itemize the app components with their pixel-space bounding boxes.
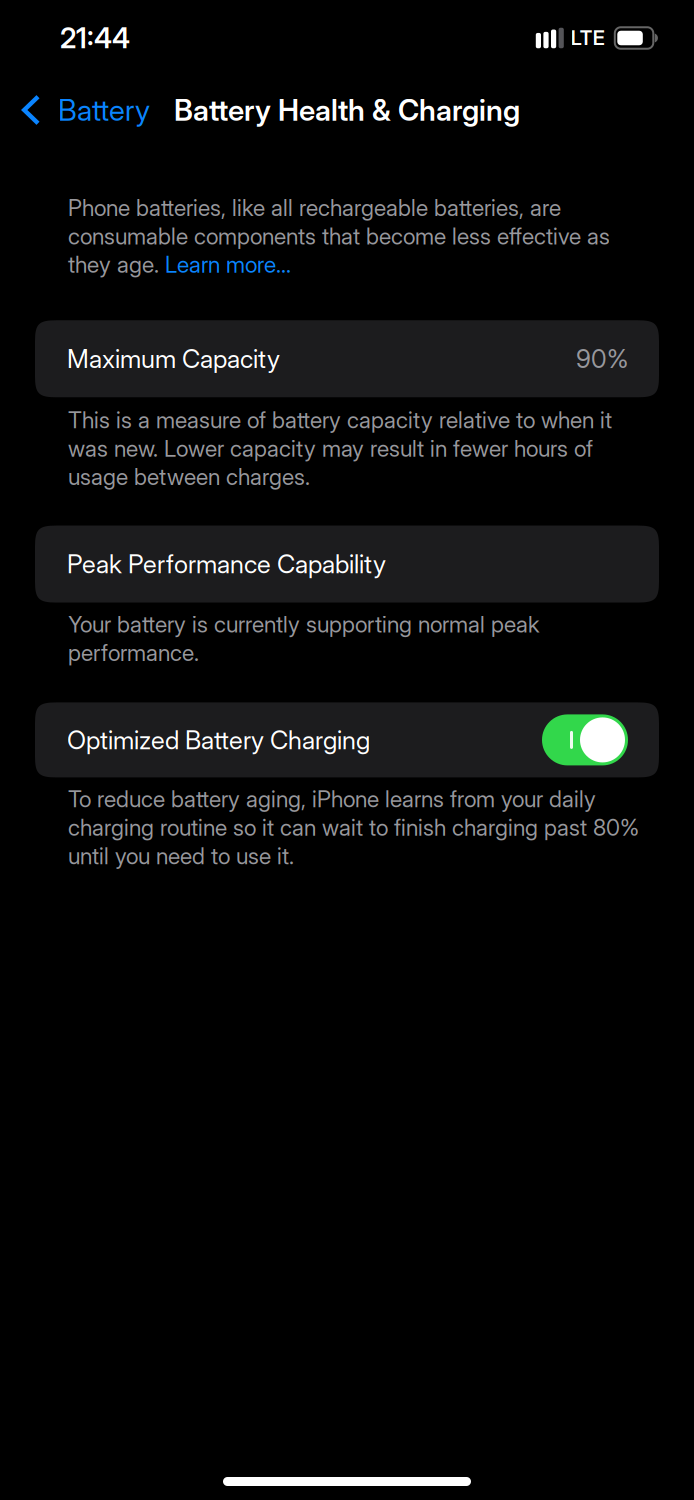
staticText: Phone batteries, like all rechargeable b… [68, 194, 561, 221]
staticText: Battery Health & Charging [174, 92, 520, 128]
button[interactable]: Maximum Capacity [35, 320, 659, 397]
button[interactable]: Peak Performance Capability [35, 526, 659, 603]
staticText: Learn more... [165, 251, 291, 278]
staticText: Optimized Battery Charging [67, 725, 370, 755]
button[interactable]: Battery [0, 82, 162, 138]
staticText: Peak Performance Capability [67, 549, 386, 579]
button[interactable]: Optimized Battery Charging [35, 702, 659, 777]
staticText: LTE [571, 26, 605, 50]
button[interactable]: Learn more... [165, 251, 291, 278]
staticText: Maximum Capacity [67, 343, 280, 374]
staticText: Battery [58, 92, 150, 128]
staticText: 90% [576, 343, 628, 374]
staticText: consumable components that become less e… [68, 222, 610, 250]
staticText: Your battery is currently supporting nor… [68, 611, 540, 666]
staticText: This is a measure of battery capacity re… [68, 406, 612, 491]
staticText: they age. [68, 251, 165, 278]
staticText: To reduce battery aging, iPhone learns f… [68, 785, 639, 870]
staticText: 21:44 [60, 21, 130, 55]
